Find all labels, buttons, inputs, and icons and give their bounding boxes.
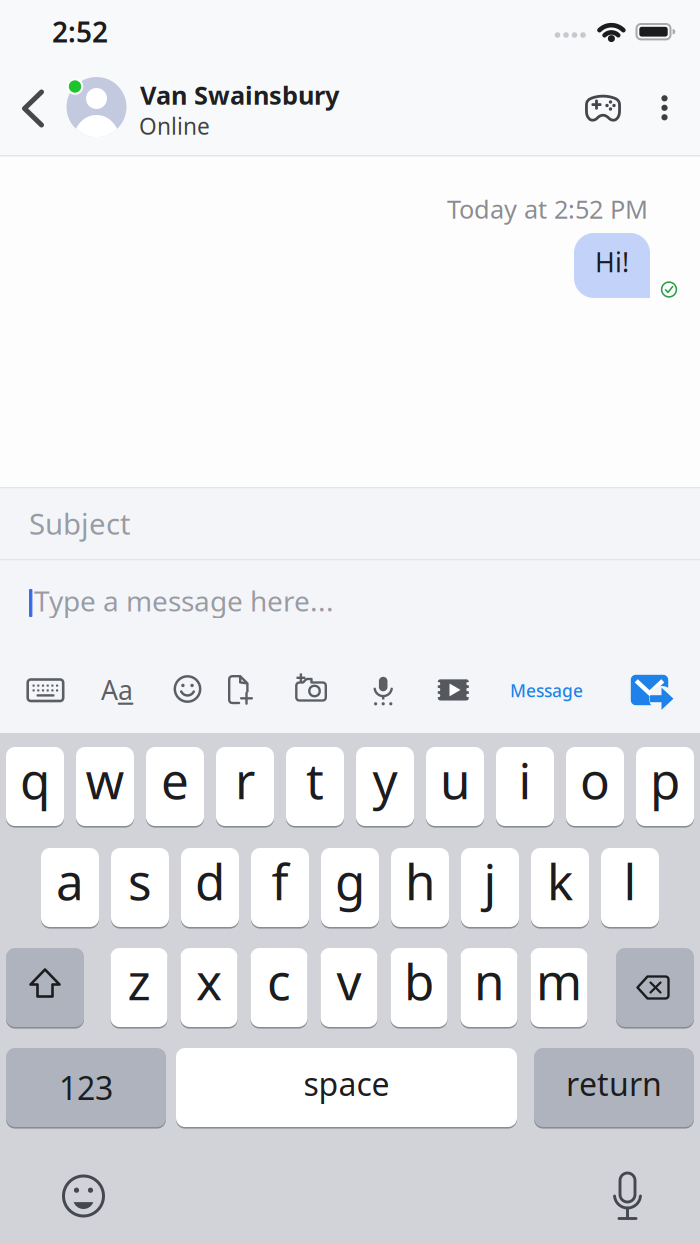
staticText: f [271,848,288,914]
button[interactable]: f [251,848,309,927]
button[interactable] [579,88,627,128]
button[interactable]: x [180,948,237,1027]
button[interactable] [365,668,401,708]
button[interactable]: h [391,848,449,927]
button[interactable]: b [390,948,447,1027]
staticText: r [235,747,255,813]
button[interactable]: q [6,747,64,826]
staticText: Online [139,111,210,141]
button[interactable]: return [534,1048,694,1127]
button[interactable]: l [601,848,659,927]
staticText: h [405,848,435,914]
button[interactable] [6,948,84,1027]
staticText: p [650,747,680,813]
button[interactable]: m [530,948,587,1027]
staticText: n [474,948,504,1014]
staticText: e [161,747,189,813]
staticText: Message [510,679,583,702]
staticText: Aa [101,672,133,707]
staticText: c [267,948,291,1014]
button[interactable] [61,1174,105,1218]
button[interactable]: t [286,747,344,826]
button[interactable]: z [110,948,167,1027]
button[interactable]: r [216,747,274,826]
button[interactable]: Van Swainsbury [0,60,360,155]
staticText: Today at 2:52 PM [447,192,648,226]
button[interactable]: e [146,747,204,826]
button[interactable] [432,668,476,708]
button[interactable] [219,668,259,708]
button[interactable]: n [460,948,517,1027]
staticText: z [127,948,150,1014]
button[interactable]: Type a message here... [0,561,700,661]
staticText: l [623,848,636,914]
staticText: s [128,848,152,914]
button[interactable]: a [41,848,99,927]
staticText: i [518,747,531,813]
button[interactable]: s [111,848,169,927]
button[interactable]: d [181,848,239,927]
button[interactable]: c [250,948,307,1027]
staticText: return [566,1062,662,1105]
button[interactable]: o [566,747,624,826]
staticText: 123 [59,1066,113,1109]
staticText: u [440,747,470,813]
button[interactable]: space [176,1048,517,1127]
staticText: d [195,848,225,914]
button[interactable]: 123 [6,1048,166,1127]
button[interactable]: Aa [98,668,138,708]
button[interactable] [290,668,334,708]
staticText: m [536,948,582,1014]
staticText: v [336,948,361,1014]
button[interactable]: g [321,848,379,927]
button[interactable] [616,948,694,1027]
staticText: o [580,747,610,813]
staticText: g [335,848,365,914]
staticText: Type a message here... [34,582,334,619]
staticText: y [372,747,397,813]
button[interactable]: v [320,948,377,1027]
button[interactable]: Message [504,668,596,708]
button[interactable] [628,667,676,711]
staticText: Hi! [595,244,629,280]
button[interactable]: j [461,848,519,927]
button[interactable] [648,88,681,128]
staticText: t [306,747,324,813]
button[interactable] [22,668,68,708]
button[interactable] [603,1168,651,1224]
button[interactable]: u [426,747,484,826]
button[interactable]: k [531,848,589,927]
button[interactable] [168,668,208,708]
staticText: b [404,948,434,1014]
staticText: Subject [29,504,131,543]
button[interactable]: i [496,747,554,826]
staticText: w [85,747,124,813]
button[interactable]: Subject [0,488,700,559]
button[interactable] [10,78,58,134]
staticText: k [547,848,573,914]
staticText: space [303,1062,389,1105]
button[interactable]: y [356,747,414,826]
staticText: q [20,747,50,813]
staticText: Van Swainsbury [140,78,339,112]
button[interactable]: p [636,747,694,826]
staticText: 2:52 [52,13,108,50]
staticText: a [56,848,84,914]
button[interactable]: w [76,747,134,826]
staticText: j [483,848,496,914]
staticText: x [196,948,222,1014]
